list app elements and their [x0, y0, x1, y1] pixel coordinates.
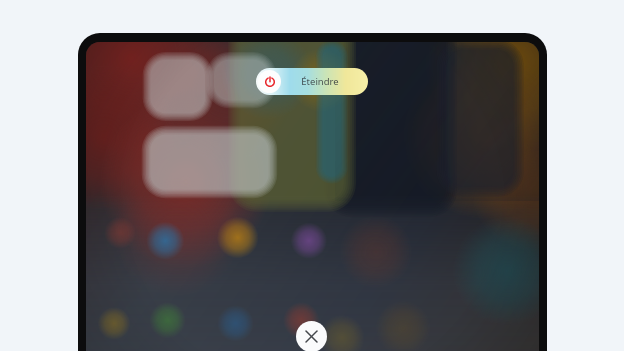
button[interactable]: Close	[296, 321, 327, 351]
button[interactable]: Éteindre	[256, 68, 368, 95]
staticText: Éteindre	[301, 75, 339, 88]
other: Power off	[258, 70, 281, 93]
